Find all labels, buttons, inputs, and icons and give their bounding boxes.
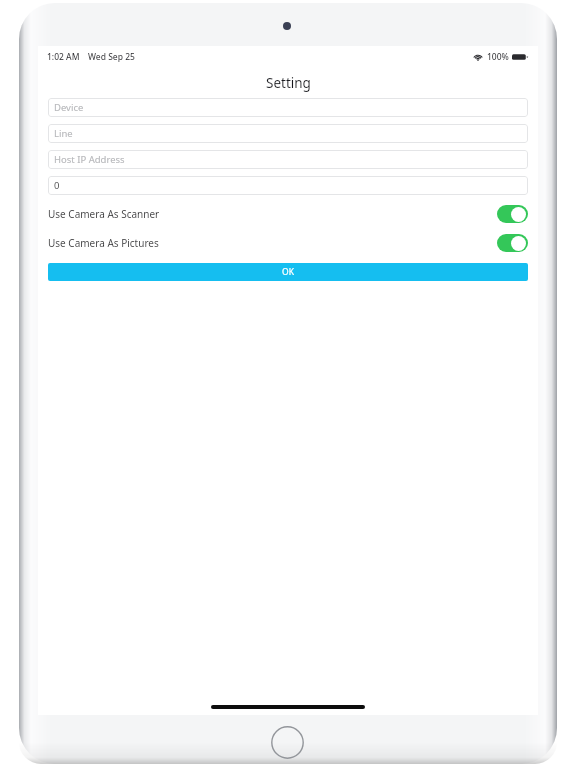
button[interactable]: Device: [48, 98, 528, 117]
button[interactable]: Use Camera As Pictures: [48, 232, 528, 254]
button[interactable]: Host IP Address: [48, 150, 528, 169]
button[interactable]: Line: [48, 124, 528, 143]
button[interactable]: Use camera toggle, on: [497, 234, 528, 252]
staticText: OK: [282, 266, 294, 278]
staticText: Wed Sep 25: [88, 51, 135, 63]
button[interactable]: OK: [48, 263, 528, 281]
staticText: Use Camera As Scanner: [48, 207, 160, 221]
staticText: Setting: [266, 74, 311, 92]
staticText: Host IP Address: [54, 153, 125, 166]
staticText: 1:02 AM: [47, 51, 80, 63]
button[interactable]: Use Camera As Scanner: [48, 203, 528, 225]
staticText: Line: [54, 127, 73, 140]
staticText: Use Camera As Pictures: [48, 236, 159, 250]
button[interactable]: Use camera toggle, on: [497, 205, 528, 223]
staticText: 100%: [487, 51, 509, 63]
button[interactable]: 0: [48, 176, 528, 195]
staticText: 0: [54, 179, 60, 192]
staticText: Device: [54, 101, 84, 114]
